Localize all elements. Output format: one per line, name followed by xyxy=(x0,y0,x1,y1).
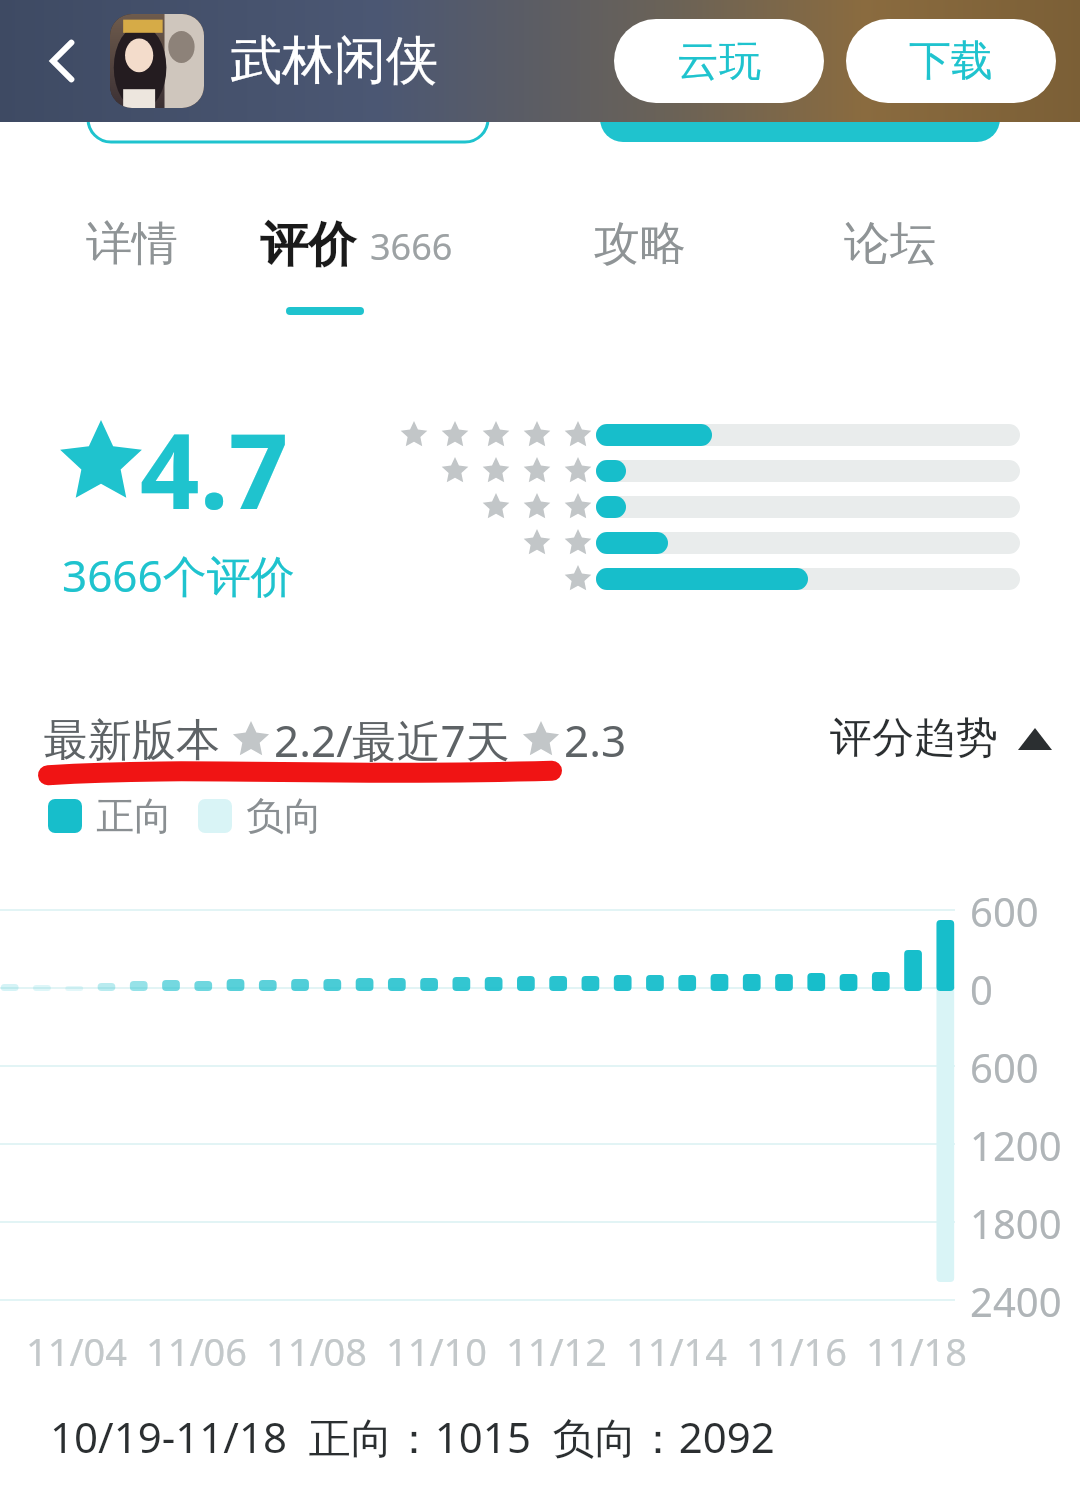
staticText: 3666 xyxy=(370,222,453,271)
button[interactable]: 评分趋势 xyxy=(830,712,1052,765)
staticText: 11/08 xyxy=(266,1325,368,1377)
staticText: 2.2/最近7天 xyxy=(274,710,510,770)
staticText: 11/04 xyxy=(26,1325,128,1377)
staticText: 11/16 xyxy=(746,1325,848,1377)
button[interactable]: 论坛 xyxy=(810,215,970,325)
staticText: 11/12 xyxy=(506,1325,608,1377)
staticText: 攻略 xyxy=(594,215,686,273)
button[interactable]: 下载 xyxy=(846,19,1056,103)
staticText: 600 xyxy=(970,884,1039,938)
staticText: 11/10 xyxy=(386,1325,488,1377)
staticText: 下载 xyxy=(909,35,993,88)
staticText: 武林闲侠 xyxy=(230,28,438,94)
staticText: 正向 xyxy=(96,792,172,840)
staticText: 0 xyxy=(970,962,993,1016)
staticText: 最新版本 xyxy=(44,713,220,768)
staticText: 1800 xyxy=(970,1196,1062,1250)
staticText: 11/18 xyxy=(866,1325,968,1377)
staticText: 论坛 xyxy=(844,215,936,273)
button[interactable]: 评价 xyxy=(260,215,510,325)
staticText: 2.3 xyxy=(564,710,627,770)
button[interactable]: Back xyxy=(24,21,104,101)
staticText: 详情 xyxy=(86,215,178,273)
staticText: 评分趋势 xyxy=(830,712,998,765)
staticText: 11/14 xyxy=(626,1325,728,1377)
staticText: 4.7 xyxy=(140,398,289,540)
staticText: 负向 xyxy=(246,792,322,840)
staticText: 评价 xyxy=(260,215,356,275)
staticText: 云玩 xyxy=(677,35,761,88)
staticText: 2400 xyxy=(970,1274,1062,1328)
button[interactable]: 攻略 xyxy=(560,215,720,325)
staticText: 3666个评价 xyxy=(62,545,295,605)
button[interactable]: 云玩 xyxy=(614,19,824,103)
staticText: 1200 xyxy=(970,1118,1062,1172)
staticText: 11/06 xyxy=(146,1325,248,1377)
button[interactable]: 详情 xyxy=(52,215,212,325)
staticText: 600 xyxy=(970,1040,1039,1094)
staticText: 10/19-11/18 正向：1015 负向：2092 xyxy=(50,1408,775,1465)
